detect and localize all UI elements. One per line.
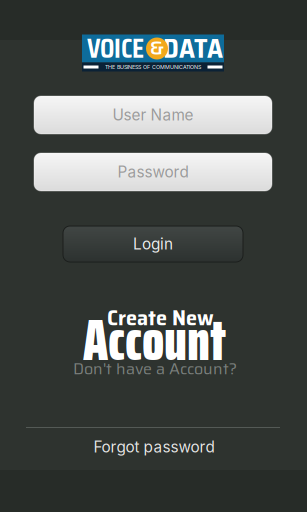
staticText: VOICE xyxy=(87,27,144,69)
staticText: Login xyxy=(133,235,173,253)
button[interactable]: User Name xyxy=(34,96,272,134)
staticText: & xyxy=(150,32,164,63)
staticText: User Name xyxy=(112,106,193,124)
button[interactable]: Password xyxy=(34,153,272,191)
staticText: Don't have a Account? xyxy=(73,356,237,381)
button[interactable]: Create New xyxy=(84,318,264,384)
staticText: THE BUSINESS OF COMMUNICATIONS xyxy=(105,64,201,70)
button[interactable]: Forgot password xyxy=(84,437,224,457)
staticText: Password xyxy=(117,163,188,181)
staticText: Forgot password xyxy=(93,438,214,456)
staticText: Create New xyxy=(107,301,214,335)
button[interactable]: Login xyxy=(63,226,243,262)
staticText: DATA xyxy=(163,27,223,69)
staticText: Account xyxy=(83,295,226,385)
